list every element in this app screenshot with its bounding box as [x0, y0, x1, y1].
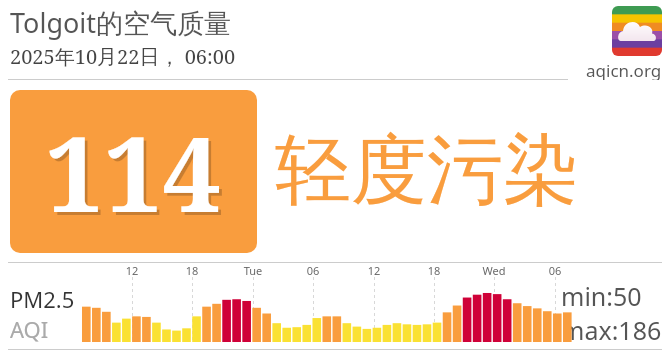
staticText: 06 — [541, 263, 569, 278]
staticText: 12 — [360, 263, 388, 278]
staticText: 18 — [420, 263, 448, 278]
staticText: 114 — [45, 101, 222, 243]
staticText: PM2.5 — [10, 284, 75, 314]
staticText: 12 — [118, 263, 146, 278]
staticText: Tolgoit的空气质量 — [10, 4, 232, 41]
staticText: 18 — [178, 263, 206, 278]
staticText: 2025年10月22日， 06:00 — [10, 43, 236, 70]
staticText: Wed — [480, 263, 508, 278]
staticText: max:186 — [561, 313, 662, 347]
button[interactable]: aqicn.org logo — [612, 6, 662, 56]
staticText: min:50 — [561, 279, 642, 313]
staticText: 114 — [48, 104, 225, 246]
staticText: Tue — [239, 263, 267, 278]
staticText: AQI — [10, 314, 49, 344]
staticText: 轻度污染 — [275, 123, 579, 219]
button[interactable]: PM2.5 AQI forecast chart — [0, 263, 670, 350]
button[interactable]: 114 — [10, 90, 257, 253]
staticText: aqicn.org — [586, 59, 662, 80]
staticText: 06 — [299, 263, 327, 278]
